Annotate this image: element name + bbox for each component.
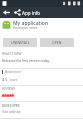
button[interactable]: UNINSTALL [3, 38, 37, 47]
staticText: Read more [5, 70, 22, 74]
staticText: Developer name [13, 26, 38, 30]
staticText: DEVELOPER [2, 104, 20, 108]
staticText: My application [13, 20, 49, 27]
button[interactable]: Share [12, 7, 22, 18]
button[interactable]: Read more [2, 70, 22, 74]
staticText: WHAT'S NEW [2, 52, 22, 56]
staticText: UNINSTALL [11, 40, 30, 45]
button[interactable]: Back [0, 7, 12, 18]
staticText: Visit website [2, 110, 21, 114]
staticText: stars [10, 78, 18, 82]
button[interactable]: OPEN [40, 38, 74, 47]
staticText: App info [22, 10, 41, 16]
staticText: REVIEWS [2, 87, 16, 91]
staticText: OPEN [52, 40, 62, 45]
staticText: 4.5 [2, 77, 8, 82]
staticText: Released the first version today [2, 59, 50, 63]
